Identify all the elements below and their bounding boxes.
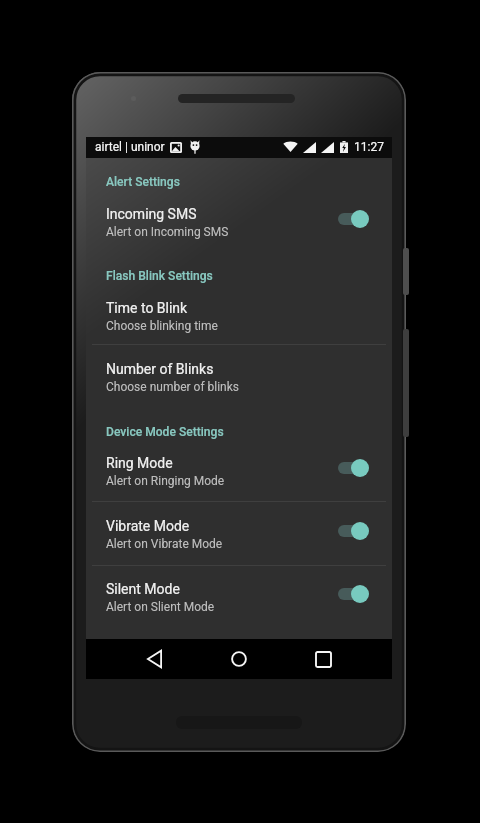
staticText: Incoming SMS xyxy=(106,206,197,222)
button[interactable]: Ring Mode xyxy=(86,445,392,492)
staticText: Vibrate Mode xyxy=(106,518,190,534)
staticText: Alert on Slient Mode xyxy=(106,600,215,614)
staticText: Silent Mode xyxy=(106,581,180,597)
staticText: Ring Mode xyxy=(106,455,173,471)
button[interactable]: Silent Mode xyxy=(86,571,392,618)
button[interactable]: Back xyxy=(120,639,189,679)
staticText: Alert on Vibrate Mode xyxy=(106,537,223,551)
staticText: Time to Blink xyxy=(106,300,188,316)
button[interactable]: Device Mode Settings xyxy=(106,425,224,439)
staticText: Flash Blink Settings xyxy=(106,269,213,283)
button[interactable]: Home xyxy=(204,639,273,679)
staticText: Alert Settings xyxy=(106,175,180,189)
button[interactable]: Time to Blink xyxy=(86,290,392,337)
staticText: Alert on Incoming SMS xyxy=(106,225,229,239)
button[interactable]: Number of Blinks xyxy=(86,351,392,398)
button[interactable]: Toggle xyxy=(338,458,370,478)
button[interactable]: Recent apps xyxy=(289,639,358,679)
staticText: Alert on Ringing Mode xyxy=(106,474,225,488)
staticText: Choose blinking time xyxy=(106,319,218,333)
button[interactable]: Toggle xyxy=(338,584,370,604)
staticText: 11:27 xyxy=(354,140,384,154)
button[interactable]: Toggle xyxy=(338,209,370,229)
button[interactable]: Vibrate Mode xyxy=(86,508,392,555)
button[interactable]: Incoming SMS xyxy=(86,196,392,243)
staticText: Choose number of blinks xyxy=(106,380,240,394)
staticText: airtel | uninor xyxy=(95,140,165,154)
staticText: Number of Blinks xyxy=(106,361,214,377)
staticText: Device Mode Settings xyxy=(106,425,224,439)
button[interactable]: Flash Blink Settings xyxy=(106,269,213,283)
button[interactable]: Toggle xyxy=(338,521,370,541)
button[interactable]: Alert Settings xyxy=(106,175,180,189)
